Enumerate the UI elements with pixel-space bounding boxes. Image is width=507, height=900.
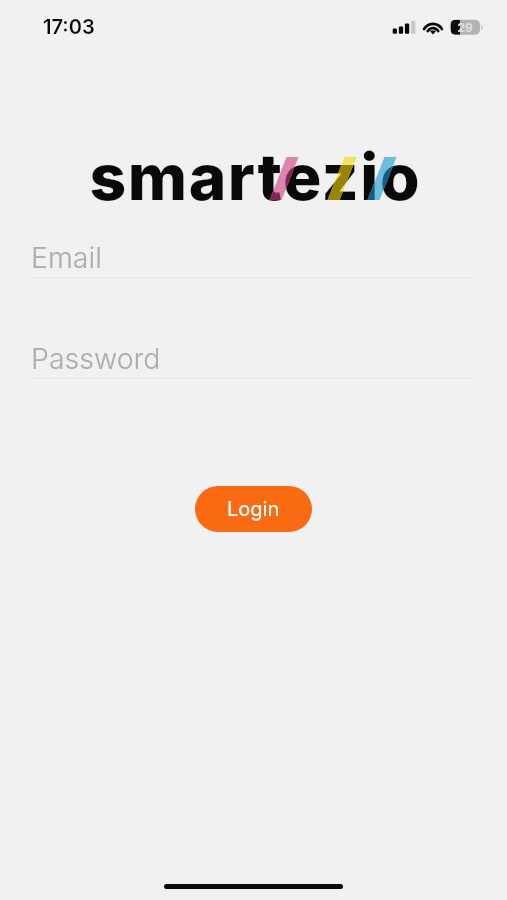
button[interactable]: Email xyxy=(33,240,474,278)
button[interactable]: Password xyxy=(33,341,474,379)
button[interactable]: Login xyxy=(195,486,312,532)
staticText: Login xyxy=(227,497,280,521)
staticText: 17:03 xyxy=(43,15,95,39)
staticText: Password xyxy=(31,341,161,375)
staticText: Email xyxy=(31,240,102,274)
